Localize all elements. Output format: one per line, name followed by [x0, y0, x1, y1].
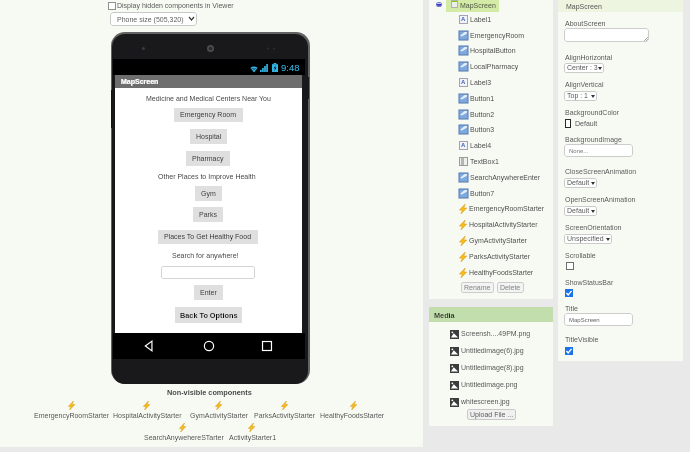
button[interactable]: Center : 3 — [564, 63, 604, 73]
staticText: Button7 — [470, 190, 495, 198]
button[interactable]: Default — [565, 119, 598, 128]
button[interactable]: None... — [564, 144, 633, 157]
staticText: Screensh....49PM.png — [461, 330, 531, 338]
button[interactable]: Pharmacy — [186, 151, 230, 166]
button[interactable]: Home — [202, 339, 216, 353]
staticText: Center : 3 — [567, 64, 598, 72]
staticText: TitleVisible — [565, 336, 599, 344]
button[interactable]: ActivityStarter1 — [229, 423, 277, 432]
button[interactable]: Enter — [194, 285, 223, 300]
staticText: Top : 1 — [567, 92, 589, 100]
button[interactable]: Delete — [497, 282, 524, 293]
button[interactable]: Places To Get Healthy Food — [158, 230, 258, 244]
staticText: Hospital — [196, 133, 222, 141]
staticText: EmergencyRoomStarter — [34, 412, 110, 420]
button[interactable]: whitescreen.jpg — [450, 397, 510, 407]
button[interactable]: HealthyFoodsStarter — [459, 266, 551, 279]
button[interactable]: Button2 — [459, 108, 551, 121]
button[interactable] — [565, 289, 573, 297]
button[interactable]: Phone size (505,320) — [110, 12, 197, 26]
staticText: Label3 — [470, 79, 492, 87]
button[interactable]: Hospital — [190, 129, 227, 144]
staticText: CloseScreenAnimation — [565, 168, 637, 176]
button[interactable]: EmergencyRoomStarter — [459, 202, 551, 215]
button[interactable]: LocalPharmacy — [459, 60, 551, 73]
button[interactable]: Button3 — [459, 123, 551, 136]
staticText: Non-visible components — [167, 388, 252, 396]
staticText: Button1 — [470, 95, 495, 103]
button[interactable]: Display hidden components in Viewer — [108, 0, 234, 11]
staticText: ParksActivityStarter — [469, 253, 531, 261]
button[interactable]: EmergencyRoom — [459, 29, 551, 42]
staticText: HealthyFoodsStarter — [320, 412, 385, 420]
staticText: HospitalActivityStarter — [113, 412, 182, 420]
button[interactable]: Rename — [461, 282, 494, 293]
staticText: BackgroundImage — [565, 136, 622, 144]
button[interactable]: Upload File ... — [467, 409, 516, 420]
staticText: whitescreen.jpg — [461, 398, 510, 406]
button[interactable]: A — [459, 13, 551, 26]
button[interactable] — [564, 28, 649, 42]
button[interactable]: ParksActivityStarter — [459, 250, 551, 263]
button[interactable]: Screensh....49PM.png — [450, 329, 531, 339]
button[interactable]: Back To Options — [175, 307, 242, 323]
button[interactable]: MapScreen — [564, 313, 633, 326]
staticText: Scrollable — [565, 252, 596, 260]
button[interactable]: HealthyFoodsStarter — [320, 401, 385, 410]
button[interactable]: Untitledimage(8).jpg — [450, 363, 524, 373]
button[interactable]: Parks — [193, 207, 223, 222]
button[interactable]: Gym — [195, 186, 222, 201]
button[interactable]: Default — [564, 206, 597, 216]
button[interactable]: A — [459, 76, 551, 89]
button[interactable]: GymActivityStarter — [190, 401, 248, 410]
staticText: MapScreen — [566, 3, 602, 11]
button[interactable]: ParksActivityStarter — [254, 401, 316, 410]
button[interactable] — [565, 347, 573, 355]
button[interactable] — [161, 266, 255, 279]
button[interactable]: Back — [142, 339, 156, 353]
button[interactable]: Top : 1 — [564, 91, 597, 101]
staticText: Display hidden components in Viewer — [117, 2, 234, 10]
button[interactable]: Recents — [260, 339, 274, 353]
button[interactable]: EmergencyRoomStarter — [34, 401, 110, 410]
staticText: Other Places to Improve Health — [158, 173, 256, 181]
button[interactable]: HospitalActivityStarter — [113, 401, 182, 410]
staticText: Untitledimage(6).jpg — [461, 347, 524, 355]
staticText: A — [461, 79, 466, 86]
staticText: GymActivityStarter — [469, 237, 527, 245]
staticText: Delete — [500, 284, 521, 292]
button[interactable]: HospitalButton — [459, 44, 551, 57]
button[interactable]: Button7 — [459, 187, 551, 200]
staticText: Back To Options — [180, 311, 238, 319]
button[interactable]: SearchAnywehereSTarter — [144, 423, 224, 432]
button[interactable]: Untitledimage(6).jpg — [450, 346, 524, 356]
staticText: Unspecified — [567, 235, 604, 243]
staticText: Untitledimage.png — [461, 381, 518, 389]
staticText: OpenScreenAnimation — [565, 196, 636, 204]
button[interactable]: Untitledimage.png — [450, 380, 518, 390]
staticText: A — [461, 16, 466, 23]
button[interactable] — [566, 262, 574, 270]
button[interactable] — [446, 0, 499, 12]
staticText: Pharmacy — [192, 155, 224, 163]
staticText: HospitalButton — [470, 47, 516, 55]
staticText: Button3 — [470, 126, 495, 134]
staticText: BackgroundColor — [565, 109, 620, 117]
staticText: SearchAnywehereSTarter — [144, 434, 224, 442]
staticText: MapScreen — [460, 2, 496, 10]
button[interactable]: TextBox1 — [459, 155, 551, 168]
staticText: AlignVertical — [565, 81, 604, 89]
button[interactable]: Button1 — [459, 92, 551, 105]
button[interactable]: SearchAnywhereEnter — [459, 171, 551, 184]
button[interactable]: Emergency Room — [174, 108, 243, 122]
button[interactable]: Unspecified — [564, 234, 612, 244]
button[interactable]: A — [459, 139, 551, 152]
staticText: Rename — [464, 284, 491, 292]
staticText: SearchAnywhereEnter — [470, 174, 541, 182]
staticText: HealthyFoodsStarter — [469, 269, 534, 277]
staticText: AboutScreen — [565, 20, 606, 28]
button[interactable]: HospitalActivityStarter — [459, 218, 551, 231]
button[interactable]: Default — [564, 178, 597, 188]
staticText: Title — [565, 305, 578, 313]
button[interactable]: GymActivityStarter — [459, 234, 551, 247]
